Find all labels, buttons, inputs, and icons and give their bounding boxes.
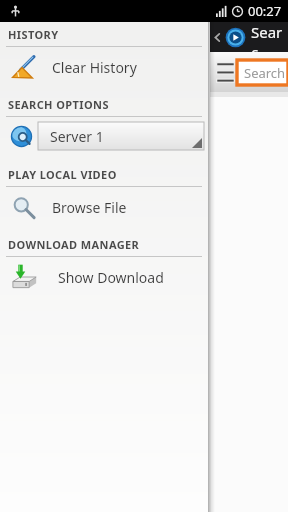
- staticText: Server 1: [50, 127, 104, 146]
- staticText: DOWNLOAD MANAGER: [8, 237, 140, 252]
- button[interactable]: Search: [237, 60, 288, 85]
- button[interactable]: App icon: [225, 27, 246, 48]
- button[interactable]: Show Download: [0, 257, 208, 297]
- button[interactable]: Clear History: [0, 47, 208, 87]
- button[interactable]: Back: [210, 22, 225, 52]
- staticText: Clear History: [52, 58, 137, 77]
- staticText: SEARCH OPTIONS: [8, 97, 109, 112]
- button[interactable]: Server 1: [0, 117, 208, 155]
- staticText: Show Download: [58, 268, 164, 287]
- staticText: Browse File: [52, 198, 127, 217]
- staticText: PLAY LOCAL VIDEO: [8, 167, 117, 182]
- button[interactable]: Menu: [212, 59, 238, 85]
- button[interactable]: Browse File: [0, 187, 208, 227]
- staticText: Searc: [251, 22, 288, 52]
- staticText: HISTORY: [8, 27, 59, 42]
- staticText: 00:27: [248, 2, 282, 20]
- staticText: Search: [244, 64, 286, 82]
